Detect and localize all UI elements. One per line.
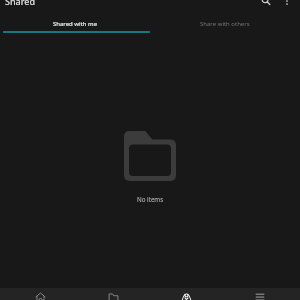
staticText: Share with others [200, 20, 250, 28]
button[interactable]: Share with others [150, 14, 300, 33]
button[interactable]: Home [4, 288, 77, 300]
button[interactable]: Shared with me [0, 14, 150, 33]
staticText: Shared with me [53, 20, 98, 28]
button[interactable]: Menu [223, 288, 296, 300]
staticText: Shared [5, 0, 36, 7]
staticText: No items [137, 195, 164, 203]
button[interactable]: Search [260, 0, 272, 7]
button[interactable]: Files [77, 288, 150, 300]
button[interactable]: Shared [150, 288, 223, 300]
button[interactable]: More options [281, 0, 293, 7]
